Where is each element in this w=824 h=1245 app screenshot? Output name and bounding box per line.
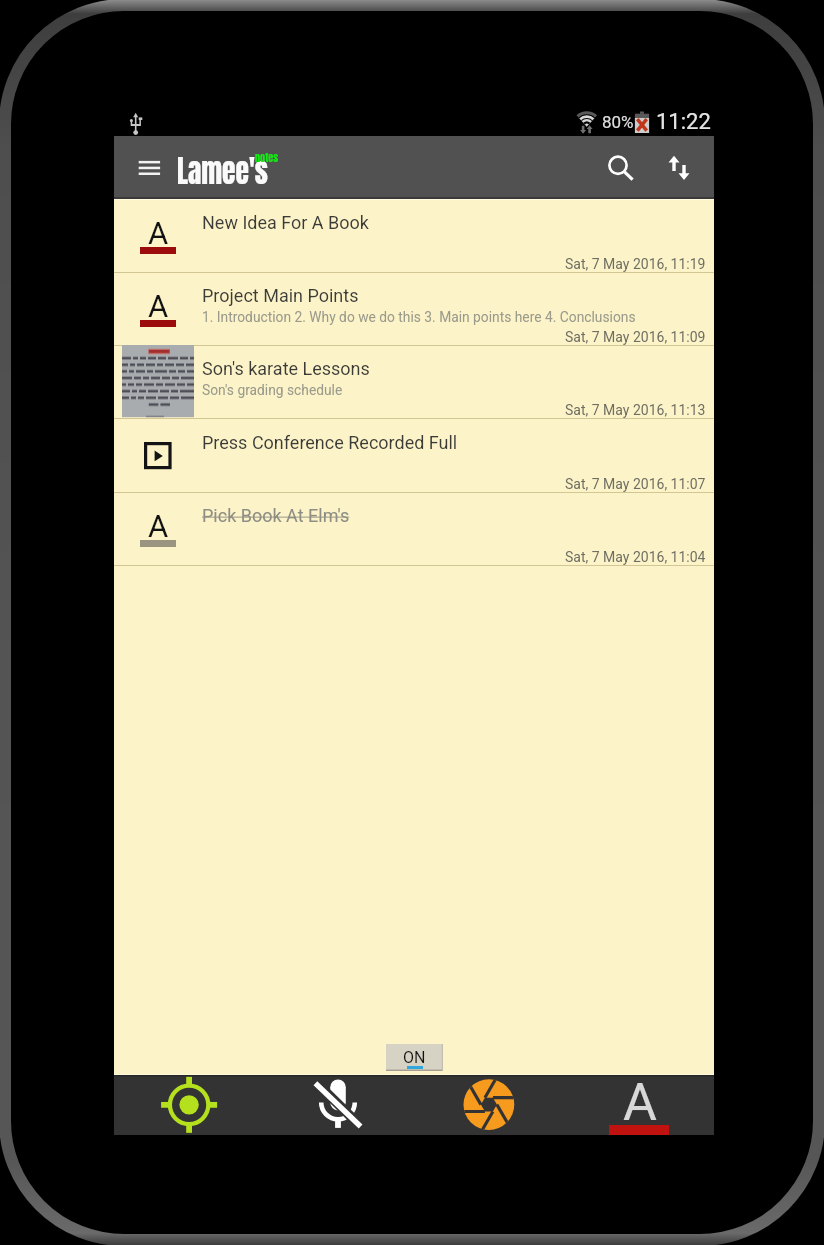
- button[interactable]: Search: [597, 144, 645, 192]
- button[interactable]: Son's karate Lessons: [114, 345, 714, 418]
- button[interactable]: Location note: [114, 1075, 264, 1135]
- button[interactable]: Sort: [655, 144, 703, 192]
- staticText: Sat, 7 May 2016, 11:13: [565, 402, 706, 418]
- button[interactable]: A: [114, 492, 714, 565]
- staticText: Project Main Points: [202, 285, 359, 306]
- staticText: Son's grading schedule: [202, 382, 343, 398]
- staticText: Sat, 7 May 2016, 11:04: [565, 549, 706, 565]
- staticText: A: [148, 508, 169, 544]
- staticText: 80%: [602, 112, 634, 132]
- staticText: notes: [255, 150, 279, 165]
- staticText: Sat, 7 May 2016, 11:09: [565, 329, 706, 345]
- staticText: Lamee's: [177, 148, 268, 195]
- staticText: A: [148, 288, 169, 324]
- staticText: Pick Book At Elm's: [202, 505, 350, 526]
- button[interactable]: Photo note: [414, 1075, 564, 1135]
- staticText: Sat, 7 May 2016, 11:07: [565, 476, 706, 492]
- button[interactable]: Press Conference Recorded Full: [114, 419, 714, 492]
- button[interactable]: A: [114, 199, 714, 272]
- staticText: Press Conference Recorded Full: [202, 432, 458, 453]
- staticText: Sat, 7 May 2016, 11:19: [565, 256, 706, 272]
- button[interactable]: Voice note muted: [264, 1075, 414, 1135]
- button[interactable]: Text note: [564, 1075, 714, 1135]
- staticText: New Idea For A Book: [202, 212, 369, 233]
- staticText: A: [623, 1072, 657, 1132]
- staticText: A: [148, 215, 169, 251]
- staticText: 1. Introduction 2. Why do we do this 3. …: [202, 309, 636, 325]
- staticText: ON: [403, 1048, 426, 1067]
- staticText: 11:22: [656, 109, 711, 135]
- button[interactable]: A: [114, 272, 714, 345]
- button[interactable]: ON: [386, 1044, 443, 1071]
- button[interactable]: Open navigation menu: [128, 146, 170, 189]
- staticText: Son's karate Lessons: [202, 358, 370, 379]
